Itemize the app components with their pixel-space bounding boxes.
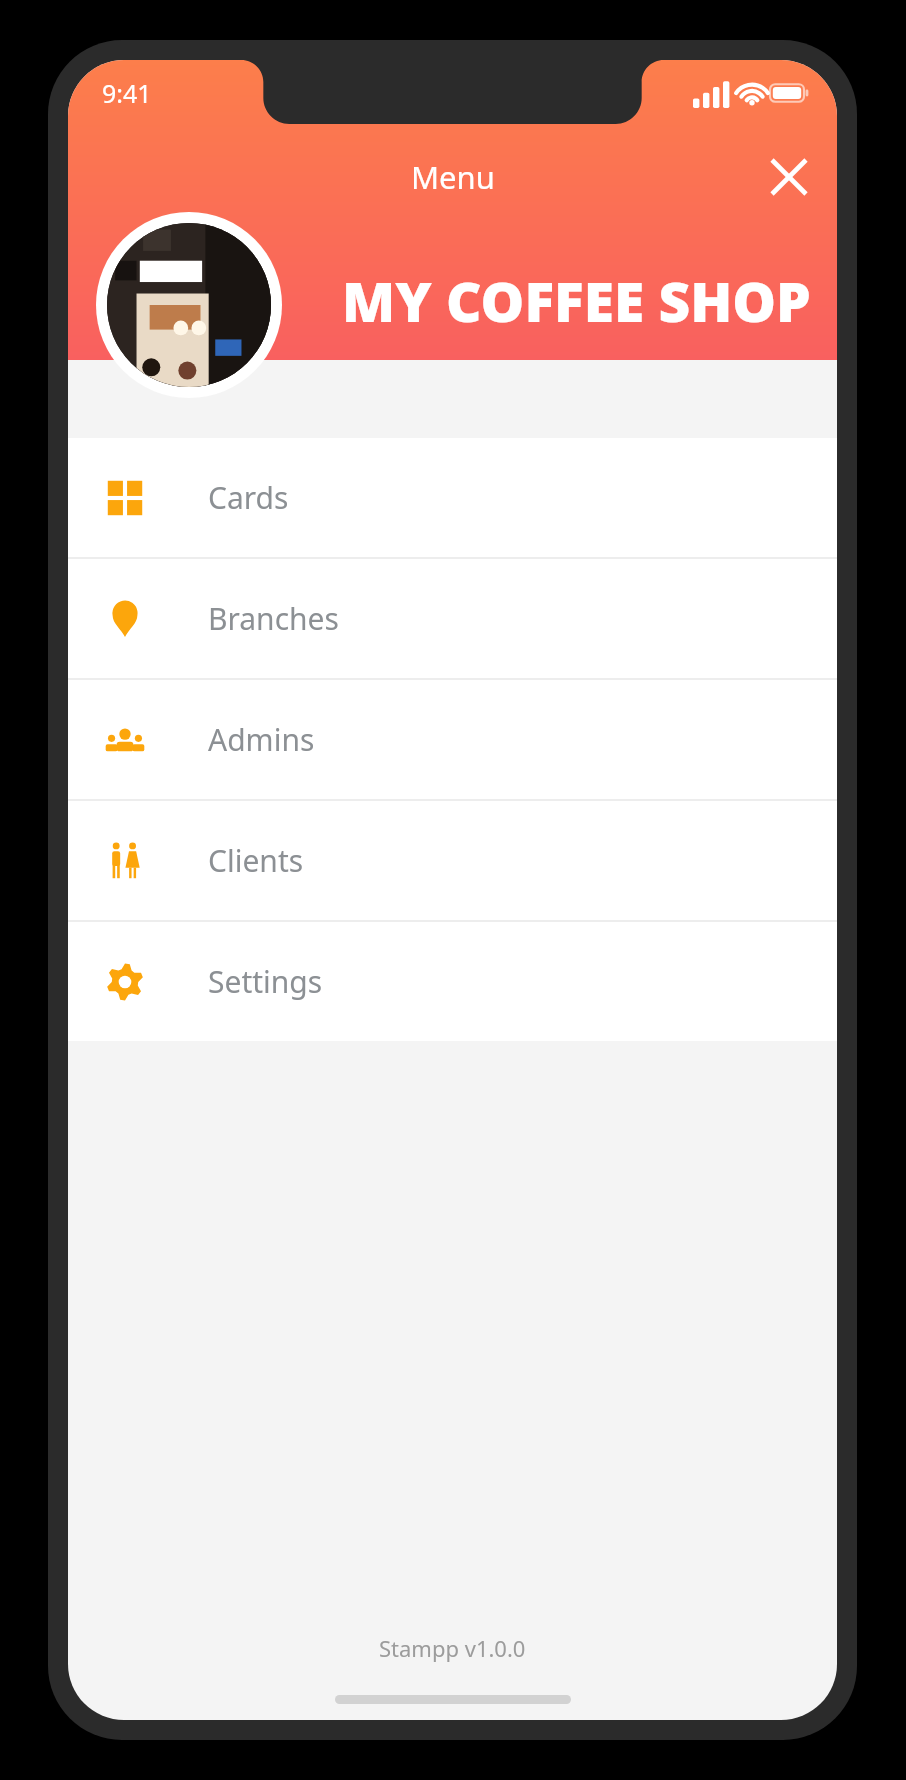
button[interactable]: Admins	[68, 680, 837, 799]
button[interactable]: Cards	[68, 438, 837, 557]
button[interactable]: Branches	[68, 559, 837, 678]
staticText: Admins	[208, 719, 315, 760]
staticText: Branches	[208, 598, 339, 639]
staticText: Cards	[208, 477, 289, 518]
staticText: Settings	[208, 961, 323, 1002]
button[interactable]: Settings	[68, 922, 837, 1041]
button[interactable]: Close menu	[757, 145, 821, 209]
staticText: Clients	[208, 840, 304, 881]
button[interactable]: Clients	[68, 801, 837, 920]
staticText: MY COFFEE SHOP	[342, 263, 811, 338]
button[interactable]: Shop photo	[107, 223, 271, 387]
staticText: 9:41	[102, 76, 152, 110]
staticText: Menu	[411, 156, 495, 198]
staticText: Stampp v1.0.0	[379, 1633, 526, 1663]
